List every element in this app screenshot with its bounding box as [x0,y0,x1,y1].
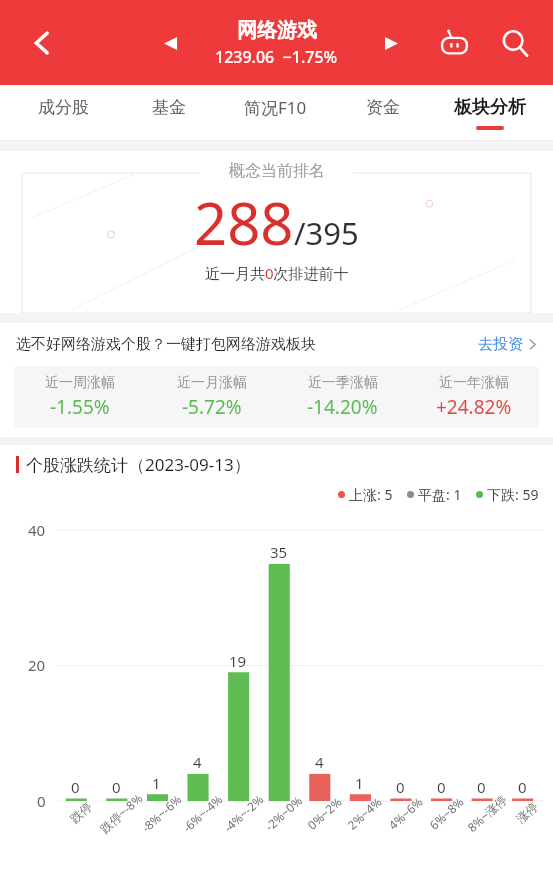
staticText: 0 [112,777,121,797]
staticText: 板块分析 [454,96,526,119]
staticText: 0 [396,777,405,797]
staticText: 35 [270,542,288,562]
staticText: 0 [477,777,486,797]
staticText: 近一月共0次排进前十 [205,263,349,283]
staticText: 网络游戏 [237,18,317,43]
staticText: 0 [71,777,80,797]
staticText: -6%~-4% [179,791,226,835]
staticText: 40 [28,520,46,540]
staticText: 成分股 [38,97,89,118]
staticText: 0 [37,791,46,811]
staticText: -1.55% [50,394,110,420]
staticText: 下跌: 59 [487,485,539,504]
staticText: 概念当前排名 [229,161,325,181]
button[interactable]: Next [371,23,411,63]
staticText: 19 [229,651,247,671]
button[interactable]: 选不好网络游戏个股？一键打包网络游戏板块 [0,323,553,366]
staticText: 0%~2% [304,793,345,833]
staticText: 4%~6% [385,793,426,833]
button[interactable]: 资金 [329,85,436,141]
staticText: 1 [355,773,364,793]
staticText: 6%~8% [426,793,467,833]
staticText: /395 [294,212,359,254]
staticText: -4%~-2% [220,791,267,835]
button[interactable]: 基金 [116,85,222,141]
staticText: 4 [315,752,324,772]
staticText: 1239.06 −1.75% [215,46,338,68]
button[interactable]: Search [491,19,539,67]
staticText: 个股涨跌统计（2023-09-13） [26,453,251,476]
staticText: 资金 [366,97,400,118]
staticText: 20 [28,655,46,675]
staticText: 近一周涨幅 [45,374,115,392]
staticText: 跌停 [67,799,95,826]
button[interactable]: 板块分析 [436,85,543,141]
button[interactable]: 成分股 [10,85,116,141]
staticText: -2%~0% [261,792,305,834]
staticText: -8%~-6% [138,791,185,835]
staticText: -14.20% [307,394,378,420]
button[interactable]: Back [20,21,64,65]
button[interactable]: AI assistant [431,20,477,66]
staticText: 跌停~-8% [96,790,146,836]
staticText: 2%~4% [344,793,385,833]
staticText: 288 [194,183,294,262]
staticText: 平盘: 1 [418,485,462,504]
staticText: 简况F10 [244,96,307,119]
staticText: 去投资 [478,335,523,354]
button[interactable]: Previous [150,23,190,63]
staticText: +24.82% [436,394,512,420]
staticText: 0 [518,777,527,797]
staticText: 8%~涨停 [464,791,510,835]
staticText: 近一月涨幅 [177,374,247,392]
staticText: 1 [152,773,161,793]
staticText: 涨停 [513,799,541,826]
button[interactable]: 简况F10 [222,85,329,141]
staticText: 选不好网络游戏个股？一键打包网络游戏板块 [16,335,316,354]
staticText: 近一季涨幅 [308,374,378,392]
staticText: 基金 [152,97,186,118]
staticText: 近一年涨幅 [439,374,509,392]
staticText: 4 [193,752,202,772]
staticText: -5.72% [182,394,242,420]
staticText: 0 [437,777,446,797]
staticText: 上涨: 5 [349,485,393,504]
